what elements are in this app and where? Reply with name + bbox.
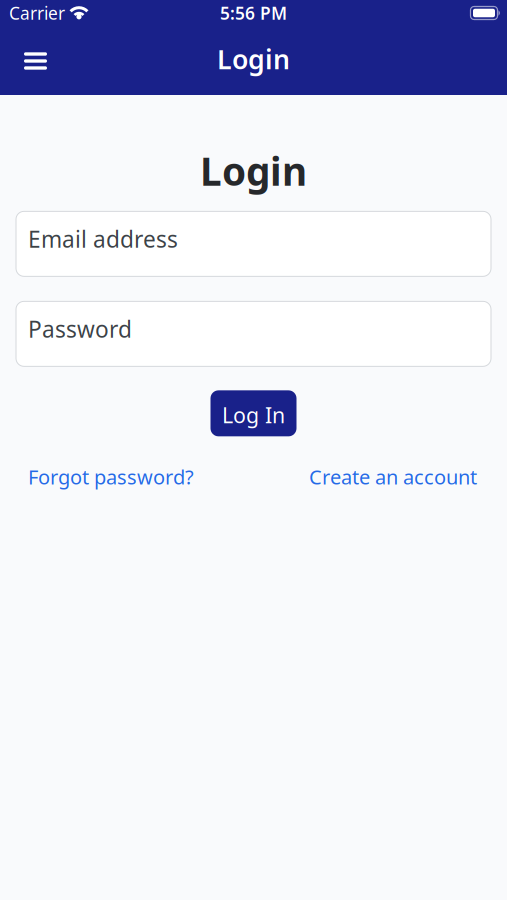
staticText: Password [28,314,132,344]
button[interactable]: Forgot password? [28,463,194,490]
staticText: Create an account [309,463,477,490]
staticText: Forgot password? [28,463,194,490]
button[interactable]: Email address [16,211,491,276]
staticText: Carrier [9,1,65,24]
staticText: Log In [222,401,285,429]
button[interactable]: Create an account [309,463,477,490]
staticText: Email address [28,224,178,254]
staticText: 5:56 PM [220,1,287,24]
staticText: Login [217,41,290,77]
button[interactable]: Menu [0,32,59,95]
button[interactable]: Log In [210,390,296,436]
staticText: Login [200,145,307,196]
button[interactable]: Password [16,301,491,366]
